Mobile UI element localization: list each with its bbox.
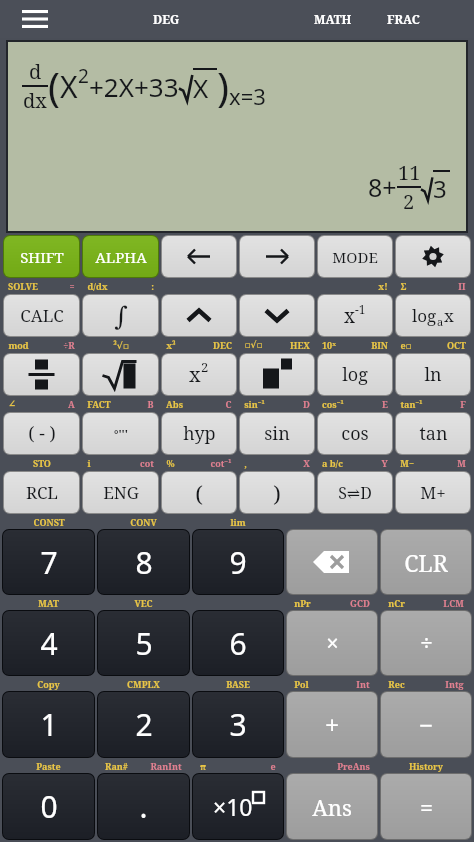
button[interactable]: Delete	[286, 529, 378, 595]
staticText: RCL	[26, 481, 58, 504]
button[interactable]: d	[8, 42, 466, 231]
button[interactable]: +	[286, 691, 378, 758]
button[interactable]: M+	[395, 471, 471, 514]
button[interactable]: ln	[395, 353, 471, 396]
staticText: CMPLX	[127, 678, 160, 690]
button[interactable]: Fraction	[3, 353, 80, 396]
staticText: STO	[33, 457, 51, 469]
staticText: 8	[135, 542, 153, 583]
button[interactable]: 7	[2, 529, 95, 595]
staticText: x=3	[229, 81, 266, 111]
button[interactable]: 3	[192, 691, 284, 758]
staticText: ÷R	[63, 339, 75, 351]
button[interactable]: Down	[239, 294, 315, 337]
staticText: )	[273, 478, 281, 508]
staticText: A	[68, 398, 75, 410]
button[interactable]: ×10	[192, 773, 284, 840]
button[interactable]: sin	[239, 412, 315, 455]
button[interactable]: SHIFT	[3, 235, 80, 278]
button[interactable]: Ans	[286, 773, 378, 840]
button[interactable]: MODE	[317, 235, 393, 278]
staticText: 1	[40, 704, 58, 745]
staticText: 2	[78, 63, 89, 89]
staticText: B	[147, 398, 154, 410]
staticText: a b/c	[322, 457, 343, 469]
button[interactable]: S⇌D	[317, 471, 393, 514]
button[interactable]: log	[395, 294, 471, 337]
staticText: FRAC	[387, 11, 420, 27]
staticText: HEX	[290, 339, 310, 351]
staticText: D	[303, 398, 310, 410]
button[interactable]: )	[239, 471, 315, 514]
staticText: e	[270, 760, 276, 772]
staticText: 3	[229, 704, 247, 745]
staticText: -1	[355, 301, 366, 317]
button[interactable]: 4	[2, 610, 95, 676]
button[interactable]: Settings	[395, 235, 471, 278]
staticText: M+	[420, 481, 446, 504]
staticText: CALC	[20, 304, 64, 327]
button[interactable]: Power	[239, 353, 315, 396]
button[interactable]: x	[161, 353, 237, 396]
button[interactable]: ENG	[82, 471, 159, 514]
staticText: +2X+33	[89, 69, 179, 104]
button[interactable]: Menu	[18, 6, 52, 32]
staticText: M	[457, 457, 466, 469]
staticText: 2	[135, 704, 153, 745]
staticText: Π	[458, 280, 466, 292]
button[interactable]: 0	[2, 773, 95, 840]
staticText: VEC	[134, 597, 153, 609]
staticText: cos	[341, 421, 369, 446]
button[interactable]: Up	[161, 294, 237, 337]
staticText: 4	[40, 623, 58, 664]
staticText: M−	[400, 457, 414, 469]
staticText: x	[189, 361, 201, 388]
button[interactable]: ÷	[380, 610, 472, 676]
button[interactable]: 2	[97, 691, 190, 758]
button[interactable]: =	[380, 773, 472, 840]
button[interactable]: tan	[395, 412, 471, 455]
staticText: 3	[433, 172, 447, 205]
button[interactable]: log	[317, 353, 393, 396]
staticText: mod	[8, 339, 29, 351]
button[interactable]: Square root	[82, 353, 159, 396]
staticText: e▫	[400, 339, 412, 351]
button[interactable]: −	[380, 691, 472, 758]
button[interactable]: hyp	[161, 412, 237, 455]
staticText: sin⁻¹	[244, 398, 265, 410]
button[interactable]: 5	[97, 610, 190, 676]
staticText: ×10	[213, 791, 253, 822]
button[interactable]: ALPHA	[82, 235, 159, 278]
button[interactable]: 1	[2, 691, 95, 758]
staticText: log	[412, 304, 437, 327]
button[interactable]: ∫	[82, 294, 159, 337]
staticText: F	[460, 398, 466, 410]
staticText: DEG	[153, 11, 180, 27]
staticText: Rec	[388, 678, 405, 690]
button[interactable]: cos	[317, 412, 393, 455]
button[interactable]: °'''	[82, 412, 159, 455]
staticText: °'''	[114, 426, 128, 441]
staticText: ▫√▫	[244, 340, 263, 351]
staticText: Σ	[400, 280, 407, 292]
button[interactable]: CALC	[3, 294, 80, 337]
button[interactable]: 8	[97, 529, 190, 595]
button[interactable]: (	[161, 471, 237, 514]
staticText: BASE	[226, 678, 250, 690]
staticText: sin	[264, 421, 290, 446]
staticText: x!	[378, 280, 388, 292]
button[interactable]: RCL	[3, 471, 80, 514]
button[interactable]: CLR	[380, 529, 472, 595]
button[interactable]: Left	[161, 235, 237, 278]
button[interactable]: Right	[239, 235, 315, 278]
button[interactable]: ×	[286, 610, 378, 676]
button[interactable]: 9	[192, 529, 284, 595]
button[interactable]: .	[97, 773, 190, 840]
button[interactable]: x	[317, 294, 393, 337]
staticText: %	[166, 457, 175, 469]
staticText: ,	[244, 457, 247, 469]
staticText: ×	[326, 629, 339, 658]
button[interactable]: ( - )	[3, 412, 80, 455]
staticText: dx	[23, 87, 47, 114]
button[interactable]: 6	[192, 610, 284, 676]
